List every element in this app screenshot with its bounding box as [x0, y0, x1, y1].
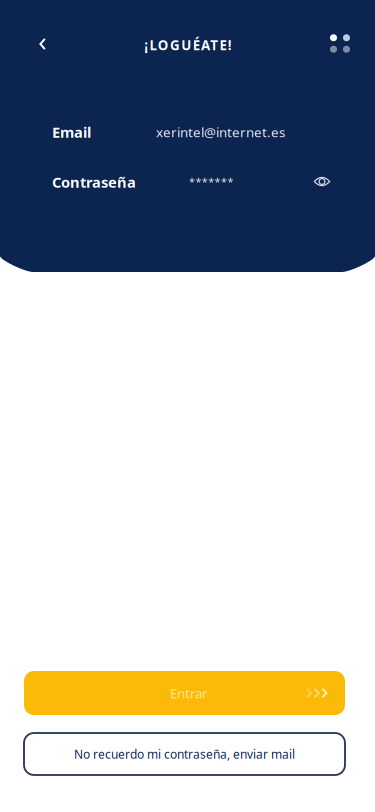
staticText: ¡LOGUÉATE!: [144, 36, 232, 54]
staticText: No recuerdo mi contraseña, enviar mail: [74, 746, 295, 762]
staticText: Entrar: [170, 684, 208, 702]
staticText: xerintel@internet.es: [156, 123, 285, 141]
button[interactable]: Back: [20, 22, 64, 66]
staticText: Email: [52, 122, 91, 142]
button[interactable]: Show password: [304, 163, 340, 199]
staticText: Contraseña: [52, 172, 136, 192]
button[interactable]: Entrar: [24, 671, 345, 715]
button[interactable]: Menu: [318, 21, 362, 65]
button[interactable]: No recuerdo mi contraseña, enviar mail: [24, 733, 345, 775]
staticText: *******: [189, 174, 233, 189]
